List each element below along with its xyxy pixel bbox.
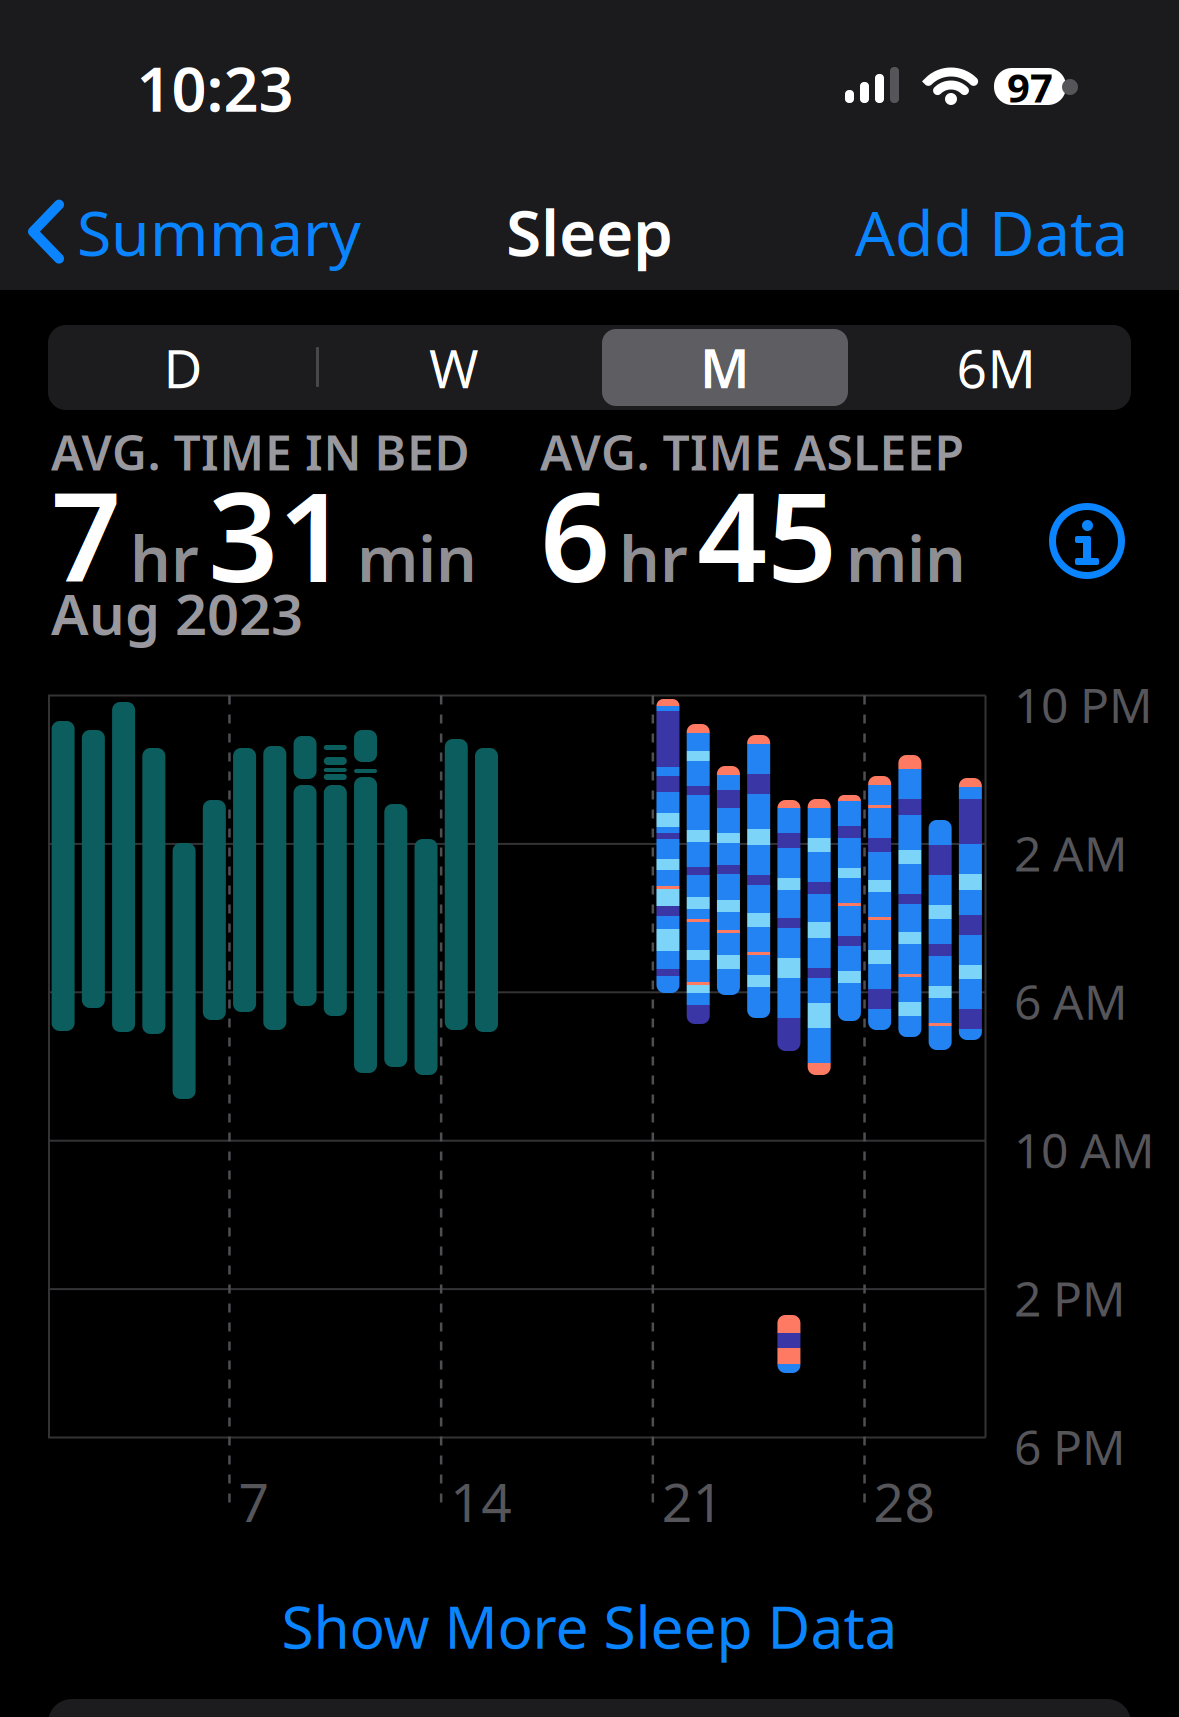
staticText: 10 PM bbox=[1014, 672, 1153, 736]
staticText: 10:23 bbox=[136, 47, 293, 129]
staticText: 2 AM bbox=[1014, 821, 1128, 885]
staticText: Summary bbox=[77, 190, 361, 273]
staticText: min bbox=[357, 515, 477, 600]
staticText: M bbox=[700, 332, 750, 403]
staticText: 21 bbox=[662, 1466, 724, 1537]
button[interactable]: W bbox=[319, 325, 589, 410]
button[interactable]: About Sleep bbox=[1049, 503, 1125, 579]
staticText: 10 AM bbox=[1014, 1118, 1155, 1181]
staticText: 97 bbox=[1007, 60, 1053, 113]
staticText: 28 bbox=[873, 1466, 935, 1537]
staticText: 45 bbox=[697, 453, 837, 616]
staticText: W bbox=[429, 332, 479, 403]
button[interactable]: M bbox=[590, 325, 860, 410]
staticText: AVG. TIME ASLEEP bbox=[540, 420, 964, 484]
staticText: Show More Sleep Data bbox=[281, 1587, 897, 1665]
staticText: hr bbox=[619, 515, 688, 600]
staticText: Sleep bbox=[506, 189, 673, 274]
staticText: Add Data bbox=[855, 190, 1128, 273]
staticText: 6M bbox=[956, 332, 1035, 403]
button[interactable]: 6M bbox=[861, 325, 1131, 410]
staticText: D bbox=[163, 332, 202, 403]
staticText: 6 PM bbox=[1014, 1414, 1126, 1478]
staticText: hr bbox=[130, 515, 199, 600]
button[interactable]: Show More Sleep Data bbox=[281, 1587, 897, 1665]
button[interactable]: Add Data bbox=[855, 190, 1128, 273]
staticText: min bbox=[846, 515, 966, 600]
staticText: 6 AM bbox=[1014, 969, 1128, 1033]
staticText: 7 bbox=[238, 1466, 269, 1537]
staticText: 31 bbox=[208, 453, 348, 616]
staticText: 7 bbox=[51, 453, 121, 616]
staticText: Aug 2023 bbox=[51, 576, 303, 650]
button[interactable]: Back to Summary bbox=[33, 190, 361, 273]
button[interactable]: D bbox=[48, 325, 318, 410]
staticText: AVG. TIME IN BED bbox=[51, 420, 469, 484]
staticText: 6 bbox=[540, 453, 610, 616]
staticText: 2 PM bbox=[1014, 1266, 1126, 1330]
staticText: 14 bbox=[450, 1466, 512, 1537]
